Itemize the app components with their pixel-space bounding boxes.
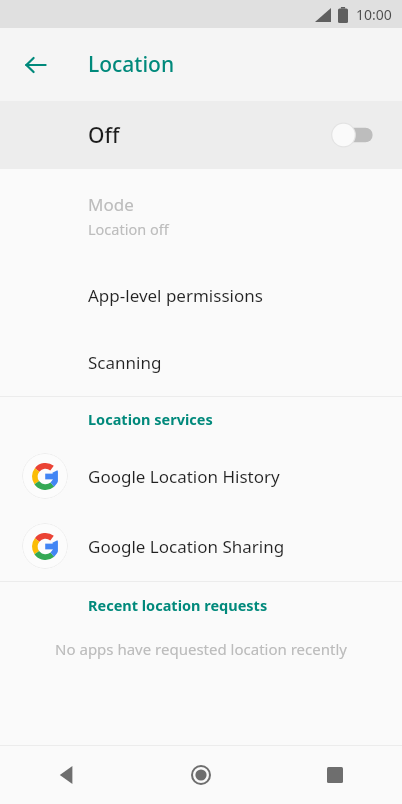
staticText: Google Location History xyxy=(88,465,280,488)
button[interactable]: Home xyxy=(134,746,268,804)
button[interactable]: Off xyxy=(0,101,402,169)
button[interactable]: Back xyxy=(12,41,60,89)
staticText: Scanning xyxy=(88,351,162,374)
button[interactable]: Google Location Sharing xyxy=(0,511,402,581)
button[interactable]: Mode xyxy=(0,170,402,262)
staticText: Location services xyxy=(88,409,213,429)
staticText: Off xyxy=(88,121,120,150)
staticText: Google Location Sharing xyxy=(88,535,285,558)
staticText: Recent location requests xyxy=(88,595,268,615)
button[interactable]: Scanning xyxy=(0,329,402,396)
button[interactable]: Back xyxy=(0,746,134,804)
staticText: App-level permissions xyxy=(88,284,263,307)
button[interactable]: Recents xyxy=(268,746,402,804)
button[interactable]: App-level permissions xyxy=(0,262,402,329)
staticText: 10:00 xyxy=(356,5,392,24)
staticText: Mode xyxy=(88,193,134,216)
staticText: Location off xyxy=(88,219,169,239)
button[interactable]: Google Location History xyxy=(0,441,402,511)
staticText: Location xyxy=(88,50,175,79)
staticText: No apps have requested location recently xyxy=(55,639,347,659)
